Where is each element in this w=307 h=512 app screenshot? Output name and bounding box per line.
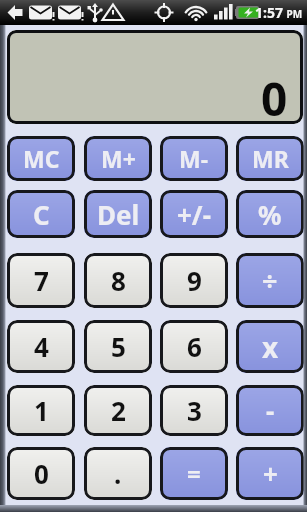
button[interactable]: M+ [84, 136, 152, 181]
button[interactable]: = [160, 447, 228, 500]
button[interactable]: 4 [7, 320, 75, 373]
staticText: 1 [34, 393, 49, 428]
staticText: 4 [34, 329, 49, 364]
button[interactable]: % [236, 190, 304, 238]
button[interactable]: MC [7, 136, 75, 181]
staticText: + [263, 456, 278, 491]
staticText: +/- [177, 197, 211, 232]
staticText: = [187, 457, 201, 490]
staticText: - [266, 393, 275, 428]
staticText: 2 [111, 393, 126, 428]
button[interactable]: MR [236, 136, 304, 181]
staticText: 6 [187, 329, 202, 364]
button[interactable]: + [236, 447, 304, 500]
staticText: M- [179, 143, 209, 174]
staticText: 9 [187, 263, 202, 298]
staticText: 0 [34, 456, 49, 491]
button[interactable]: . [84, 447, 152, 500]
staticText: . [114, 456, 122, 491]
button[interactable]: +/- [160, 190, 228, 238]
button[interactable]: 8 [84, 253, 152, 308]
staticText: 0 [261, 67, 288, 124]
staticText: MR [252, 143, 289, 174]
button[interactable]: 1 [7, 385, 75, 436]
staticText: 7 [34, 263, 49, 298]
staticText: M+ [101, 143, 136, 174]
button[interactable]: C [7, 190, 75, 238]
button[interactable]: Del [84, 190, 152, 238]
button[interactable]: 3 [160, 385, 228, 436]
staticText: x [262, 328, 279, 366]
staticText: Del [97, 197, 140, 232]
staticText: MC [23, 143, 60, 174]
button[interactable]: 2 [84, 385, 152, 436]
button[interactable]: M- [160, 136, 228, 181]
button[interactable]: 6 [160, 320, 228, 373]
button[interactable]: 7 [7, 253, 75, 308]
staticText: C [33, 197, 50, 232]
button[interactable]: ÷ [236, 253, 304, 308]
staticText: ÷ [262, 262, 278, 299]
staticText: 1:57 PM [255, 3, 303, 22]
staticText: % [258, 197, 282, 232]
staticText: 8 [111, 263, 126, 298]
button[interactable]: 0 [7, 447, 75, 500]
button[interactable]: 9 [160, 253, 228, 308]
staticText: 5 [111, 329, 126, 364]
staticText: 3 [187, 393, 202, 428]
button[interactable]: 5 [84, 320, 152, 373]
button[interactable]: - [236, 385, 304, 436]
button[interactable]: x [236, 320, 304, 373]
